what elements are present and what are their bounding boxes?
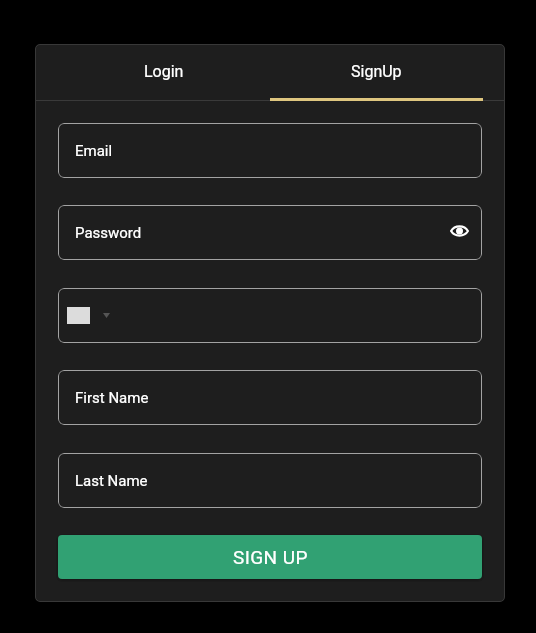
staticText: Password: [75, 224, 142, 242]
button[interactable]: Email: [58, 123, 482, 178]
staticText: SIGN UP: [233, 546, 308, 568]
button[interactable]: SignUp: [270, 44, 483, 101]
button[interactable]: Toggle password visibility: [446, 220, 472, 242]
button[interactable]: Last Name: [58, 453, 482, 508]
button[interactable]: Login: [57, 44, 270, 101]
button[interactable]: Select country code: [58, 288, 482, 343]
staticText: Email: [75, 142, 113, 160]
staticText: Login: [144, 62, 184, 81]
staticText: SignUp: [351, 62, 402, 81]
button[interactable]: SIGN UP: [58, 535, 482, 579]
staticText: First Name: [75, 389, 149, 407]
button[interactable]: First Name: [58, 370, 482, 425]
staticText: Last Name: [75, 472, 148, 490]
button[interactable]: Password: [58, 205, 482, 260]
